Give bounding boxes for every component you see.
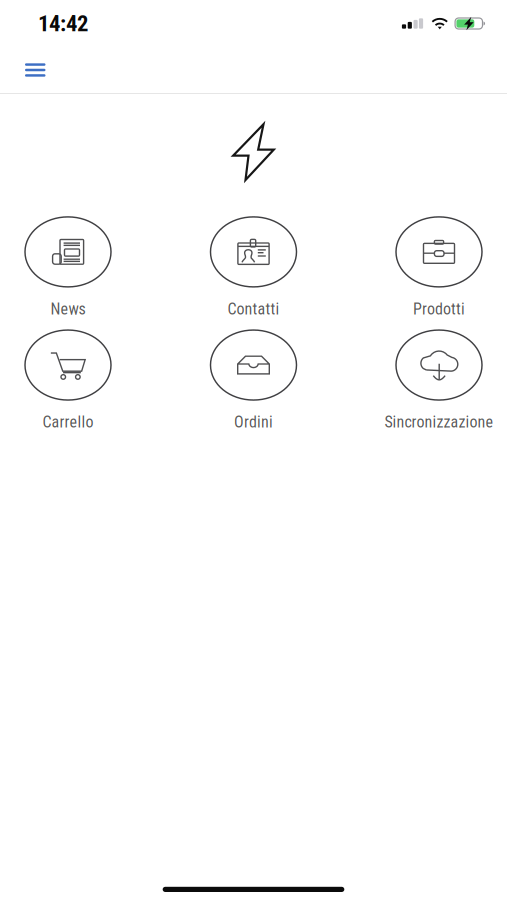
button[interactable]: Menu: [17, 53, 53, 87]
staticText: 14:42: [38, 10, 88, 37]
button[interactable]: Ordini: [185, 329, 321, 432]
button[interactable]: News: [0, 216, 136, 318]
staticText: Contatti: [227, 300, 279, 318]
staticText: Ordini: [234, 413, 273, 432]
button[interactable]: Prodotti: [371, 216, 507, 318]
button[interactable]: Contatti: [185, 216, 321, 318]
button[interactable]: Carrello: [0, 329, 136, 432]
button[interactable]: Sincronizzazione: [371, 329, 507, 432]
staticText: Sincronizzazione: [384, 413, 493, 432]
staticText: News: [50, 300, 85, 318]
staticText: Prodotti: [413, 300, 465, 318]
staticText: Carrello: [42, 413, 93, 432]
